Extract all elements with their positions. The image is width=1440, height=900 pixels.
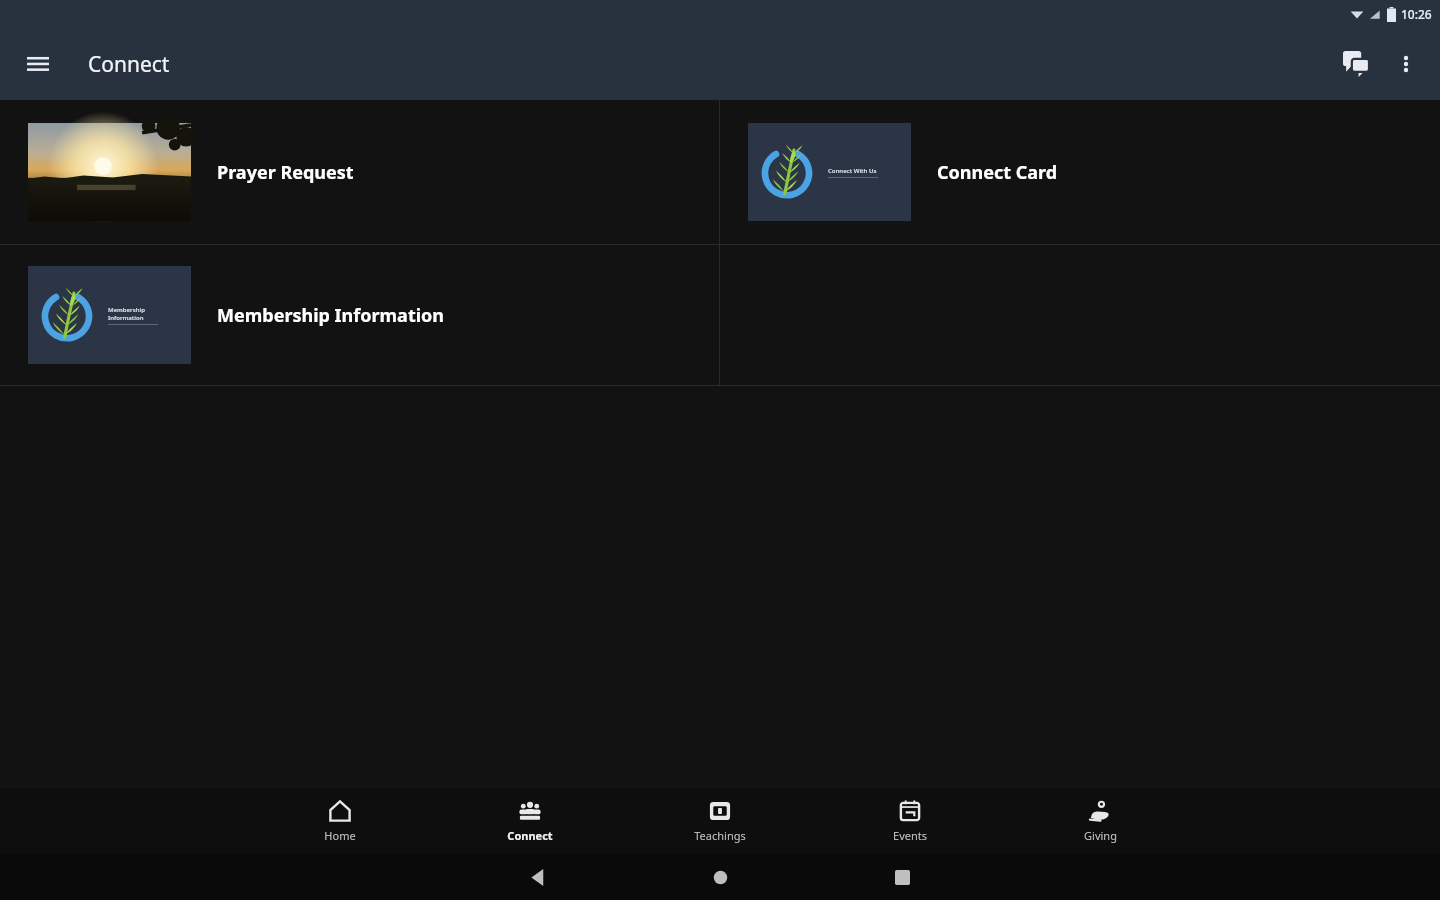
button[interactable]: Connect: [435, 793, 625, 849]
staticText: 10:26: [1401, 6, 1432, 22]
staticText: Connect: [507, 828, 553, 843]
button[interactable]: Prayer Request: [0, 100, 719, 244]
staticText: Teachings: [694, 828, 746, 843]
staticText: Membership: [108, 306, 145, 314]
button[interactable]: Giving: [1005, 793, 1195, 849]
staticText: Information: [108, 314, 144, 322]
button[interactable]: Events: [815, 793, 1005, 849]
button[interactable]: More options: [1382, 40, 1430, 88]
staticText: Events: [893, 828, 927, 843]
button[interactable]: Home: [245, 793, 435, 849]
staticText: Prayer Request: [217, 160, 354, 185]
staticText: Connect With Us: [828, 167, 877, 175]
button[interactable]: Messages: [1330, 38, 1382, 90]
button[interactable]: Recent apps: [811, 854, 993, 900]
staticText: Giving: [1084, 828, 1117, 843]
button[interactable]: Connect With Us: [720, 100, 1440, 244]
button[interactable]: Open navigation drawer: [14, 40, 62, 88]
button[interactable]: Teachings: [625, 793, 815, 849]
staticText: Connect Card: [937, 160, 1058, 185]
staticText: Membership Information: [217, 303, 445, 328]
staticText: Connect: [88, 50, 170, 79]
button[interactable]: Membership: [0, 245, 719, 385]
staticText: Home: [324, 828, 356, 843]
button[interactable]: Home: [629, 854, 811, 900]
button[interactable]: Back: [447, 854, 629, 900]
